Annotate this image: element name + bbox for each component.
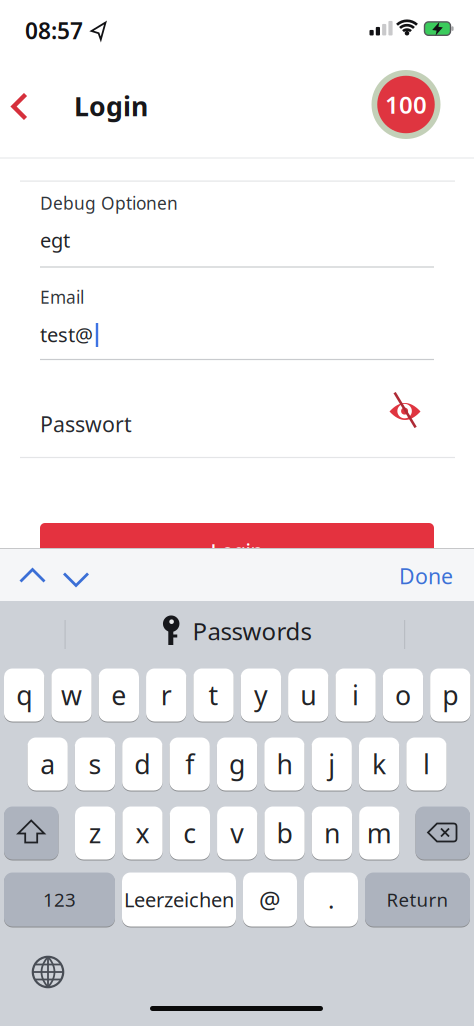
button[interactable]: m [359,806,399,860]
staticText: Return [386,887,448,912]
staticText: y [254,677,268,713]
button[interactable]: l [406,737,447,791]
button[interactable]: r [146,668,186,722]
staticText: x [135,815,149,851]
button[interactable]: q [4,668,44,722]
button[interactable]: p [430,668,470,722]
staticText: Passwort [40,410,132,438]
button[interactable]: @ [243,872,297,927]
button[interactable]: . [304,872,358,927]
staticText: z [89,815,102,851]
staticText: Email [40,285,84,308]
button[interactable]: g [217,737,257,791]
staticText: o [395,677,411,713]
button[interactable]: Leerzeichen [122,872,236,927]
staticText: egt [40,227,70,253]
staticText: n [324,815,340,851]
button[interactable]: Back [0,84,42,128]
button[interactable]: a [27,737,68,791]
button[interactable]: b [264,806,305,860]
button[interactable]: e [99,668,139,722]
button[interactable]: Passwords [72,603,402,659]
button[interactable]: s [75,737,115,791]
staticText: b [276,815,292,851]
button[interactable]: Next field [59,562,95,592]
staticText: g [229,746,245,782]
staticText: Login [210,537,263,564]
staticText: @ [259,884,281,915]
button[interactable]: k [359,737,399,791]
button[interactable]: n [312,806,352,860]
staticText: Leerzeichen [124,886,234,913]
button[interactable]: Next keyboard [26,950,70,994]
button[interactable]: Done [389,555,463,597]
staticText: 123 [43,887,76,912]
button[interactable]: Return [365,872,470,927]
button[interactable]: 123 [4,872,115,927]
staticText: c [183,815,196,851]
button[interactable]: Passwort [20,390,455,458]
staticText: 08:57 [25,15,83,45]
staticText: Passwords [192,615,311,647]
staticText: p [442,677,458,713]
button[interactable]: f [170,737,210,791]
button[interactable]: y [241,668,281,722]
button[interactable]: v [217,806,257,860]
staticText: f [185,746,194,782]
button[interactable]: Shift [4,806,58,860]
staticText: q [16,677,32,713]
staticText: h [276,746,292,782]
button[interactable]: Login [40,523,434,581]
button[interactable]: i [335,668,376,722]
staticText: Done [399,562,453,590]
button[interactable]: x [122,806,163,860]
staticText: t [209,677,219,713]
button[interactable]: o [383,668,423,722]
staticText: d [134,746,150,782]
staticText: test@ [40,321,93,348]
button[interactable]: Email [40,282,434,372]
button[interactable]: c [170,806,210,860]
staticText: e [111,677,126,713]
staticText: a [40,746,55,782]
button[interactable]: Debug Optionen [40,189,434,273]
staticText: r [161,677,172,713]
staticText: m [367,815,392,851]
button[interactable]: h [264,737,304,791]
staticText: w [61,677,82,713]
staticText: Debug Optionen [40,191,178,214]
button[interactable]: Previous field [15,560,51,590]
staticText: k [372,746,386,782]
button[interactable]: j [312,737,352,791]
button[interactable]: d [122,737,162,791]
staticText: i [352,677,359,713]
staticText: u [300,677,316,713]
staticText: Login [74,88,148,124]
staticText: 100 [385,89,427,120]
staticText: j [328,746,335,782]
button[interactable]: w [51,668,92,722]
button[interactable]: u [288,668,328,722]
button[interactable]: t [193,668,234,722]
staticText: s [88,746,101,782]
staticText: v [230,815,244,851]
staticText: l [423,746,430,782]
button[interactable]: Delete [415,806,470,860]
button[interactable]: z [75,806,115,860]
button[interactable]: Show password [383,386,427,432]
staticText: . [328,884,334,915]
